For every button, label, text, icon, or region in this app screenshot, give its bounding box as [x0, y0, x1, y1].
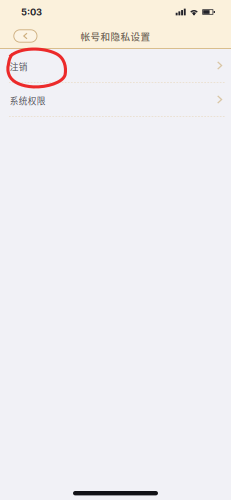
button[interactable]: Back	[14, 30, 37, 42]
staticText: 系统权限	[10, 94, 46, 107]
staticText: 帐号和隐私设置	[80, 29, 150, 43]
button[interactable]: 系统权限	[0, 83, 231, 116]
staticText: 注销	[10, 60, 28, 73]
button[interactable]: 注销	[0, 49, 231, 82]
staticText: 5:03	[21, 6, 42, 18]
